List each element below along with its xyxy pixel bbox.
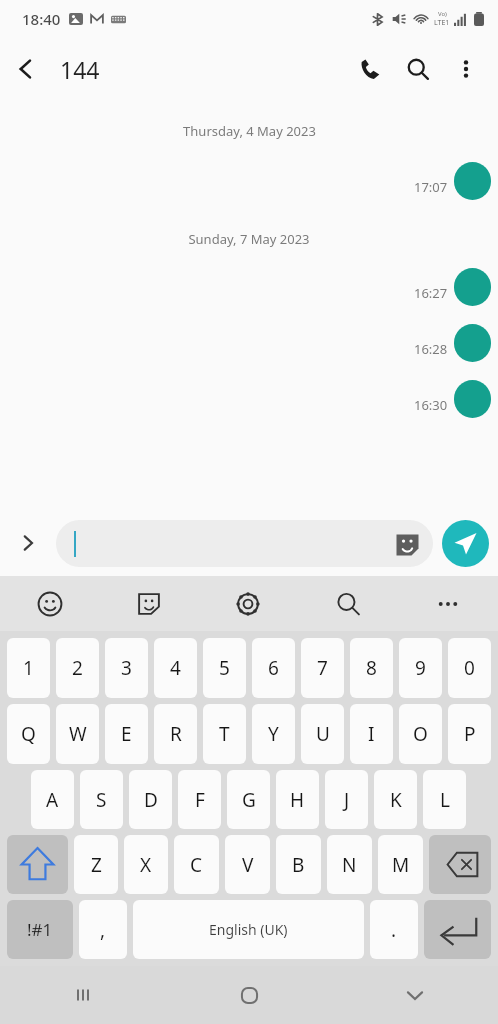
staticText: H [290,787,305,813]
staticText: 3 [121,655,132,681]
button[interactable]: 4 [154,638,197,698]
button[interactable]: R [154,704,197,764]
staticText: W [69,721,87,747]
staticText: 1 [23,655,34,681]
staticText: Vo) [438,10,447,18]
staticText: Thursday, 4 May 2023 [183,122,316,140]
button[interactable]: Shift [7,835,68,894]
button[interactable]: Recents [0,966,166,1024]
button[interactable]: V [225,835,270,894]
button[interactable]: Q [7,704,50,764]
staticText: 18:40 [22,9,61,29]
button[interactable]: H [276,770,319,829]
button[interactable]: Backspace [429,835,491,894]
button[interactable]: 5 [203,638,246,698]
button[interactable]: 9 [399,638,442,698]
staticText: 16:27 [414,284,448,302]
button[interactable]: 16:28 [0,324,498,362]
staticText: U [316,721,330,747]
button[interactable]: More [398,576,498,631]
button[interactable]: D [129,770,172,829]
staticText: !#1 [27,918,53,941]
button[interactable]: 17:07 [0,162,498,200]
button[interactable]: Hide keyboard [332,966,498,1024]
button[interactable]: Expand [0,515,56,571]
button[interactable]: P [448,704,491,764]
staticText: , [100,917,106,943]
staticText: G [242,787,256,813]
button[interactable]: 16:27 [0,268,498,306]
button[interactable]: Z [74,835,118,894]
button[interactable]: E [105,704,148,764]
button[interactable]: 6 [252,638,295,698]
staticText: P [464,721,476,747]
staticText: . [391,917,397,943]
button[interactable]: Emoji [0,576,99,631]
button[interactable]: U [301,704,344,764]
staticText: A [46,787,59,813]
staticText: 4 [170,655,181,681]
staticText: 2 [72,655,83,681]
staticText: LTE1 [434,18,450,28]
staticText: 17:07 [414,178,448,196]
button[interactable]: Search [394,45,442,93]
staticText: 5 [219,655,230,681]
staticText: C [190,852,203,878]
button[interactable]: B [276,835,321,894]
staticText: K [390,787,402,813]
staticText: J [344,787,350,813]
staticText: 144 [60,54,100,85]
button[interactable]: M [378,835,423,894]
button[interactable]: C [174,835,219,894]
button[interactable]: K [374,770,417,829]
button[interactable]: 7 [301,638,344,698]
button[interactable]: 16:30 [0,380,498,418]
button[interactable]: Stickers [393,530,421,558]
staticText: X [140,852,152,878]
button[interactable]: !#1 [7,900,73,959]
button[interactable]: Y [252,704,295,764]
button[interactable]: 8 [350,638,393,698]
staticText: M [392,852,410,878]
button[interactable]: English (UK) [133,900,364,959]
button[interactable]: Home [166,966,332,1024]
staticText: 7 [317,655,328,681]
button[interactable]: I [350,704,393,764]
staticText: 9 [415,655,426,681]
button[interactable]: , [79,900,127,959]
staticText: V [242,852,254,878]
button[interactable]: N [327,835,372,894]
button[interactable]: Stickers [56,520,433,567]
staticText: N [342,852,357,878]
button[interactable]: L [423,770,466,829]
button[interactable]: A [31,770,74,829]
staticText: F [195,787,205,813]
button[interactable]: 0 [448,638,491,698]
button[interactable]: Back [0,43,52,95]
button[interactable]: Stickers [99,576,198,631]
button[interactable]: Settings [198,576,298,631]
button[interactable]: 2 [56,638,99,698]
button[interactable]: Send [442,520,489,567]
staticText: Z [91,852,102,878]
button[interactable]: 3 [105,638,148,698]
button[interactable]: X [124,835,168,894]
button[interactable]: G [227,770,270,829]
button[interactable]: O [399,704,442,764]
button[interactable]: J [325,770,368,829]
staticText: E [121,721,132,747]
button[interactable]: Enter [424,900,491,959]
staticText: B [292,852,305,878]
button[interactable]: More options [442,45,490,93]
button[interactable]: Call [346,45,394,93]
button[interactable]: 1 [7,638,50,698]
button[interactable]: S [80,770,123,829]
button[interactable]: F [178,770,221,829]
button[interactable]: T [203,704,246,764]
staticText: R [170,721,182,747]
staticText: Sunday, 7 May 2023 [188,230,310,248]
button[interactable]: Search [298,576,398,631]
staticText: T [219,721,230,747]
button[interactable]: W [56,704,99,764]
button[interactable]: . [370,900,418,959]
